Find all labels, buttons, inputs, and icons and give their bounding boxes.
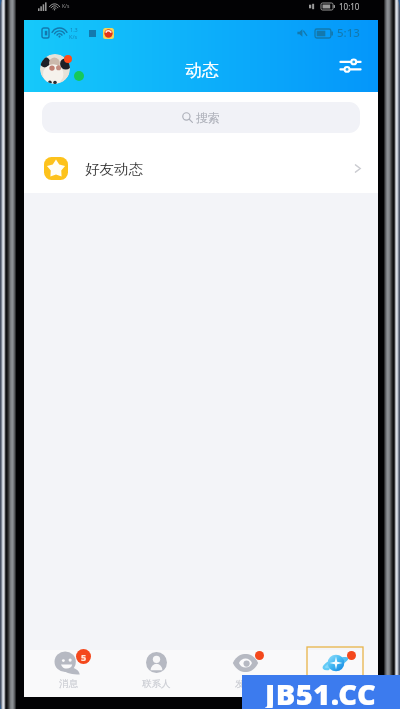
button[interactable]: 动态 (289, 650, 378, 697)
button[interactable]: 好友动态 (24, 144, 378, 193)
staticText: 动态 (324, 678, 343, 690)
staticText: JB51.CC (265, 674, 377, 708)
staticText: 动态 (185, 60, 219, 81)
staticText: 发现 (235, 678, 254, 690)
staticText: 5 (81, 651, 87, 663)
staticText: 联系人 (142, 678, 171, 690)
button[interactable]: 联系人 (112, 650, 200, 697)
staticText: 搜索 (196, 110, 220, 125)
staticText: 好友动态 (85, 160, 143, 178)
button[interactable]: Settings (337, 54, 363, 76)
staticText: K/s (69, 33, 78, 40)
button[interactable]: 5 (24, 650, 112, 697)
staticText: 消息 (59, 678, 78, 690)
button[interactable]: 搜索 (42, 102, 360, 133)
staticText: 5:13 (337, 25, 360, 41)
button[interactable]: Profile (40, 54, 70, 84)
staticText: 1.3 (70, 26, 78, 33)
button[interactable]: 发现 (200, 650, 289, 697)
staticText: K/s (62, 3, 70, 10)
staticText: 10:10 (339, 1, 360, 12)
